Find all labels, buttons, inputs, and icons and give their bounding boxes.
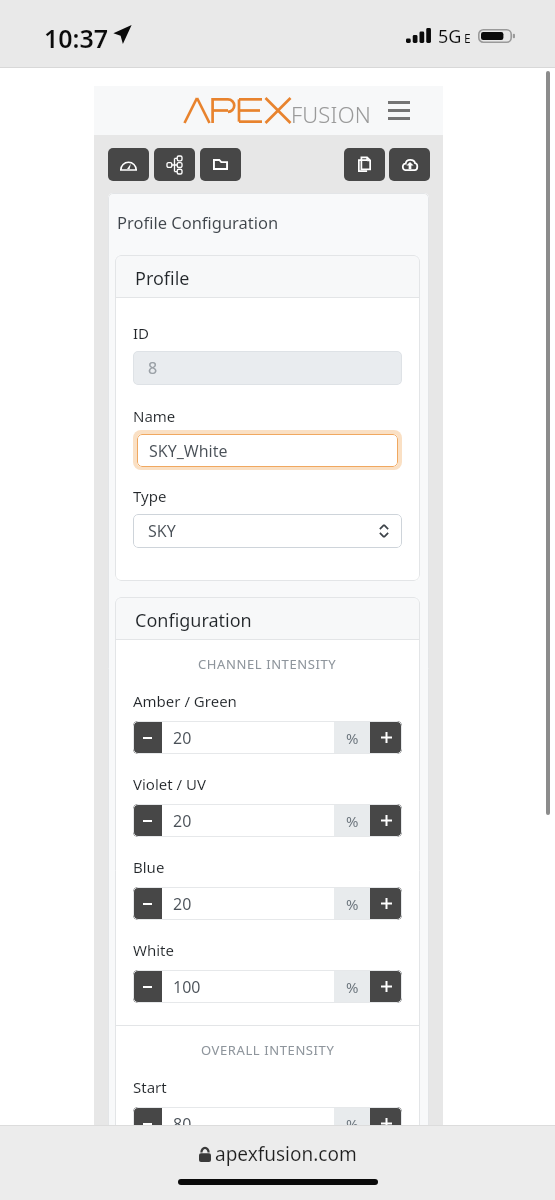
staticText: Blue [133, 857, 165, 877]
staticText: 80 [173, 1113, 192, 1135]
button[interactable]: SKY [133, 514, 402, 548]
staticText: FUSION [291, 99, 371, 129]
button[interactable]: Upload [389, 148, 430, 181]
button[interactable]: Menu [378, 88, 418, 132]
staticText: SKY_White [149, 440, 228, 462]
staticText: White [133, 940, 174, 960]
staticText: E [464, 30, 471, 46]
button[interactable]: 8 [133, 351, 402, 385]
button[interactable]: Decrease Blue [133, 887, 162, 920]
staticText: Configuration [135, 608, 252, 633]
staticText: 20 [173, 727, 192, 749]
staticText: 20 [173, 893, 192, 915]
button[interactable]: Increase White [370, 970, 402, 1003]
staticText: % [346, 894, 359, 914]
staticText: Name [133, 406, 176, 426]
staticText: Start [133, 1077, 167, 1097]
staticText: Type [133, 486, 167, 506]
staticText: 8 [148, 357, 158, 379]
staticText: Profile Configuration [117, 211, 279, 233]
button[interactable]: Increase Start [370, 1107, 402, 1140]
staticText: 10:37 [44, 21, 109, 55]
button[interactable]: SKY_White [133, 430, 402, 470]
staticText: apexfusion.com [215, 1141, 357, 1167]
staticText: Violet / UV [133, 774, 207, 794]
button[interactable]: Increase Violet / UV [370, 804, 402, 837]
button[interactable]: Decrease Start [133, 1107, 162, 1140]
button[interactable]: Copy [344, 148, 385, 181]
staticText: % [346, 811, 359, 831]
staticText: SKY [148, 520, 176, 542]
staticText: % [346, 977, 359, 997]
button[interactable]: Folder [200, 148, 241, 181]
staticText: % [346, 728, 359, 748]
staticText: ID [133, 323, 150, 343]
staticText: Profile [135, 266, 190, 291]
button[interactable]: Decrease Violet / UV [133, 804, 162, 837]
staticText: CHANNEL INTENSITY [198, 655, 337, 673]
staticText: % [346, 1114, 359, 1134]
button[interactable]: Dashboard [108, 148, 149, 181]
button[interactable]: Devices [154, 148, 195, 181]
staticText: 100 [173, 976, 201, 998]
button[interactable]: Increase Blue [370, 887, 402, 920]
staticText: 20 [173, 810, 192, 832]
staticText: Amber / Green [133, 691, 237, 711]
button[interactable]: Decrease Amber / Green [133, 721, 162, 754]
button[interactable]: Increase Amber / Green [370, 721, 402, 754]
staticText: OVERALL INTENSITY [201, 1041, 335, 1059]
button[interactable]: Decrease White [133, 970, 162, 1003]
staticText: 5G [438, 24, 462, 49]
